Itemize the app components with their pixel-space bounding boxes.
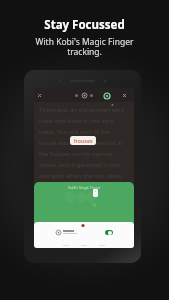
staticText: There was an old woman who bbox=[39, 105, 125, 113]
staticText: street, and it gleamed in red bbox=[39, 160, 120, 168]
button[interactable]: houses bbox=[70, 136, 96, 145]
staticText: and gold when the sun came bbox=[39, 171, 122, 179]
staticText: Stay Focussed bbox=[44, 17, 125, 33]
button[interactable]: Magic Finger bbox=[101, 90, 112, 101]
button[interactable]: Rewind bbox=[73, 92, 80, 99]
staticText: houses bbox=[74, 137, 93, 144]
staticText: With Kobi's Magic Finger tracking. bbox=[34, 36, 135, 58]
button[interactable] bbox=[56, 227, 113, 237]
button[interactable]: Play bbox=[80, 91, 88, 99]
staticText: Kobi's Magic Finger bbox=[68, 185, 101, 190]
staticText: the houses on the narrow bbox=[39, 149, 113, 157]
button[interactable]: Forward bbox=[88, 92, 95, 99]
button[interactable]: Close book bbox=[35, 91, 44, 100]
button[interactable]: Dismiss bbox=[120, 91, 129, 100]
staticText: lived and loved in the little bbox=[39, 116, 114, 124]
staticText: house was the brightest of all bbox=[39, 138, 124, 146]
staticText: town. The red roof of her bbox=[39, 127, 111, 135]
